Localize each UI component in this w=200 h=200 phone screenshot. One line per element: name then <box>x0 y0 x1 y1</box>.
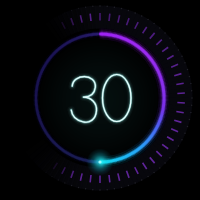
button[interactable]: Timer, 30 seconds remaining <box>0 0 200 200</box>
